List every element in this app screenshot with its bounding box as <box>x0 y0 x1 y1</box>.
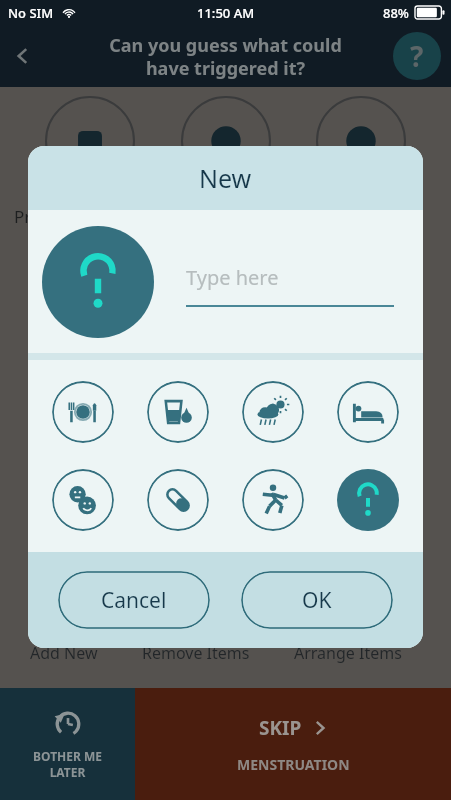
button[interactable]: SKIP <box>135 688 451 800</box>
button[interactable]: Weather <box>242 381 304 443</box>
button[interactable]: Mood <box>52 469 114 531</box>
staticText: No SIM <box>8 4 54 22</box>
button[interactable]: Cancel <box>58 571 210 629</box>
staticText: 88% <box>383 4 409 22</box>
button[interactable]: Type here <box>186 264 394 307</box>
button[interactable]: Back <box>0 33 46 79</box>
button[interactable]: Food <box>52 381 114 443</box>
staticText: SKIP <box>259 715 302 741</box>
button[interactable]: BOTHER ME LATER <box>0 688 135 800</box>
staticText: New <box>199 161 252 195</box>
button[interactable]: Help <box>393 32 441 80</box>
staticText: BOTHER ME LATER <box>33 748 102 780</box>
staticText: MENSTRUATION <box>237 755 350 774</box>
staticText: ? <box>410 37 424 75</box>
staticText: Cancel <box>101 586 167 615</box>
button[interactable]: Sleep <box>337 381 399 443</box>
staticText: OK <box>302 586 332 615</box>
staticText: Pr <box>14 205 32 228</box>
staticText: Remove Items <box>142 642 250 664</box>
staticText: Arrange Items <box>294 642 402 664</box>
button[interactable]: Choose icon <box>42 226 154 338</box>
staticText: 11:50 AM <box>197 4 255 22</box>
staticText: Type here <box>186 264 279 291</box>
button[interactable]: Medication <box>147 469 209 531</box>
button[interactable]: Drink <box>147 381 209 443</box>
button[interactable]: OK <box>241 571 393 629</box>
button[interactable]: Exercise <box>242 469 304 531</box>
button[interactable]: Other <box>337 469 399 531</box>
staticText: Can you guess what could have triggered … <box>109 33 342 80</box>
staticText: Add New <box>30 642 98 664</box>
